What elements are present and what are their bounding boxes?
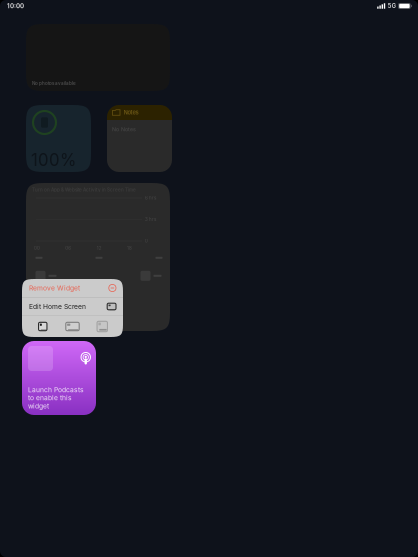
staticText: Turn on App & Website Activity in Screen… xyxy=(32,187,136,192)
button[interactable]: No photos available xyxy=(26,24,170,91)
button[interactable]: Launch Podcasts to enable this widget xyxy=(22,341,96,415)
button[interactable]: Small widget xyxy=(35,320,51,333)
staticText: 12 xyxy=(97,245,102,251)
staticText: 18 xyxy=(127,245,132,251)
button[interactable]: Notes xyxy=(107,105,172,172)
staticText: 10:00 xyxy=(7,2,24,10)
staticText: 06 xyxy=(65,245,71,251)
staticText: 00 xyxy=(34,245,40,251)
button[interactable]: Edit Home Screen xyxy=(22,297,123,315)
staticText: 5G xyxy=(388,3,396,9)
staticText: Edit Home Screen xyxy=(29,302,86,311)
button[interactable]: Large widget xyxy=(94,320,110,333)
staticText: 3 hrs xyxy=(145,217,156,222)
staticText: No photos available xyxy=(32,80,76,86)
staticText: Remove Widget xyxy=(29,284,80,292)
staticText: No Notes xyxy=(112,126,136,132)
button[interactable]: Remove Widget xyxy=(22,279,123,297)
button[interactable]: Turn on App & Website Activity in Screen… xyxy=(26,183,170,331)
button[interactable]: Medium widget xyxy=(63,320,81,333)
staticText: Notes xyxy=(123,109,138,116)
staticText: 6 hrs xyxy=(145,195,156,201)
staticText: Launch Podcasts to enable this widget xyxy=(28,386,84,410)
staticText: 100% xyxy=(31,150,76,170)
staticText: 0 xyxy=(145,238,148,244)
button[interactable]: 100% xyxy=(26,105,91,172)
